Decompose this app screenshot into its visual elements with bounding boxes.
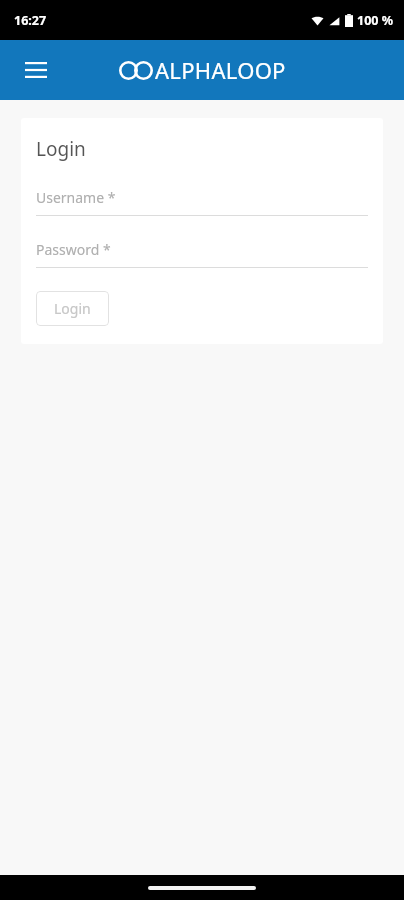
staticText: Login (36, 136, 86, 162)
button[interactable]: Password * (36, 240, 368, 268)
staticText: 16:27 (14, 12, 47, 29)
staticText: Login (54, 299, 91, 318)
staticText: ALPHALOOP (155, 55, 286, 85)
button[interactable]: Login (36, 291, 109, 326)
staticText: 100 % (357, 12, 393, 29)
staticText: Password * (36, 240, 111, 259)
staticText: Username * (36, 188, 116, 207)
button[interactable]: Username * (36, 188, 368, 216)
button[interactable]: Open navigation menu (14, 48, 58, 92)
